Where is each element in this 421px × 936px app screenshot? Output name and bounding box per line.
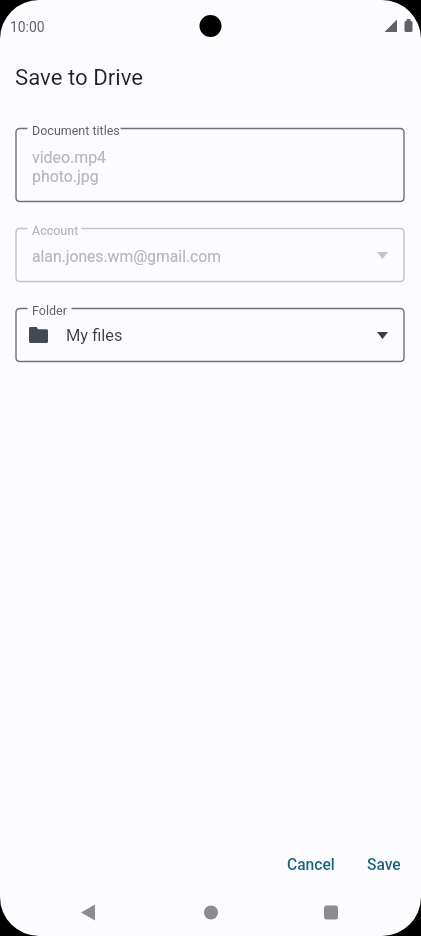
staticText: Account: [32, 223, 79, 238]
staticText: Cancel: [287, 856, 335, 874]
staticText: My files: [66, 326, 123, 345]
staticText: video.mp4: [32, 148, 106, 167]
staticText: Save: [367, 856, 401, 874]
staticText: 10:00: [10, 19, 45, 35]
staticText: Save to Drive: [15, 64, 144, 90]
staticText: Folder: [32, 303, 67, 318]
button[interactable]: Cancel: [275, 847, 347, 883]
button[interactable]: Recent apps: [307, 889, 355, 936]
button[interactable]: Save: [355, 847, 413, 883]
staticText: Document titles: [32, 123, 120, 138]
button[interactable]: Back: [64, 889, 112, 936]
button[interactable]: Home: [187, 889, 235, 936]
staticText: alan.jones.wm@gmail.com: [32, 247, 222, 265]
staticText: photo.jpg: [32, 167, 99, 186]
